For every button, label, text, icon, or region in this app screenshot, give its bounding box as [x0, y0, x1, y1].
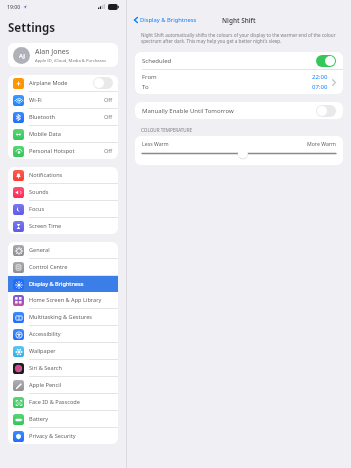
- staticText: Manually Enable Until Tomorrow: [142, 107, 316, 115]
- button[interactable]: Colour temperature: [142, 149, 336, 159]
- button[interactable]: Accessibility: [8, 326, 118, 342]
- staticText: 19:00: [7, 3, 21, 10]
- staticText: Display & Brightness: [29, 280, 113, 288]
- staticText: Notifications: [29, 171, 113, 179]
- staticText: From: [142, 73, 157, 81]
- staticText: Airplane Mode: [29, 79, 93, 87]
- staticText: Multitasking & Gestures: [29, 313, 113, 321]
- staticText: 07:00: [312, 83, 328, 91]
- button[interactable]: Wi-Fi: [8, 92, 118, 108]
- staticText: Bluetooth: [29, 113, 104, 121]
- button[interactable]: Manually Enable Until Tomorrow: [135, 102, 343, 119]
- staticText: Settings: [8, 20, 56, 36]
- staticText: Sounds: [29, 188, 113, 196]
- staticText: COLOUR TEMPERATURE: [141, 127, 193, 133]
- staticText: Night Shift automatically shifts the col…: [141, 32, 337, 44]
- staticText: Apple Pencil: [29, 381, 113, 389]
- staticText: Apple ID, iCloud, Media & Purchases: [35, 58, 107, 64]
- button[interactable]: Bluetooth: [8, 109, 118, 125]
- staticText: Display & Brightness: [140, 16, 197, 24]
- staticText: Siri & Search: [29, 364, 113, 372]
- staticText: General: [29, 246, 113, 254]
- button[interactable]: Mobile Data: [8, 126, 118, 142]
- button[interactable]: Multitasking & Gestures: [8, 309, 118, 325]
- button[interactable]: Notifications: [8, 167, 118, 183]
- staticText: Personal Hotspot: [29, 147, 104, 155]
- staticText: Wallpaper: [29, 347, 113, 355]
- button[interactable]: Control Centre: [8, 259, 118, 275]
- staticText: Face ID & Passcode: [29, 398, 113, 406]
- staticText: AJ: [19, 52, 25, 60]
- staticText: Less Warm: [142, 140, 169, 147]
- staticText: Focus: [29, 205, 113, 213]
- staticText: Screen Time: [29, 222, 113, 230]
- staticText: To: [142, 83, 149, 91]
- button[interactable]: Focus: [8, 201, 118, 217]
- staticText: Battery: [29, 415, 113, 423]
- staticText: Off: [104, 113, 113, 121]
- button[interactable]: Scheduled: [316, 55, 336, 67]
- button[interactable]: Battery: [8, 411, 118, 427]
- staticText: Scheduled: [142, 57, 316, 65]
- button[interactable]: From: [135, 70, 343, 94]
- button[interactable]: Home Screen & App Library: [8, 292, 118, 308]
- button[interactable]: Apple Pencil: [8, 377, 118, 393]
- staticText: Off: [104, 96, 113, 104]
- staticText: Mobile Data: [29, 130, 113, 138]
- staticText: More Warm: [307, 140, 336, 147]
- button[interactable]: Personal Hotspot: [8, 143, 118, 159]
- staticText: Wi-Fi: [29, 96, 104, 104]
- staticText: Off: [104, 147, 113, 155]
- button[interactable]: Airplane Mode: [8, 75, 118, 91]
- button[interactable]: Wallpaper: [8, 343, 118, 359]
- button[interactable]: Sounds: [8, 184, 118, 200]
- staticText: Accessibility: [29, 330, 113, 338]
- button[interactable]: Privacy & Security: [8, 428, 118, 444]
- button[interactable]: Display & Brightness: [8, 276, 118, 292]
- button[interactable]: Scheduled: [135, 52, 343, 69]
- staticText: Control Centre: [29, 263, 113, 271]
- staticText: Alan Jones: [35, 47, 70, 57]
- staticText: Night Shift: [222, 16, 256, 25]
- button[interactable]: Siri & Search: [8, 360, 118, 376]
- button[interactable]: AJ: [8, 43, 118, 67]
- staticText: Privacy & Security: [29, 432, 113, 440]
- button[interactable]: Manually Enable Until Tomorrow: [316, 105, 336, 117]
- staticText: 22:00: [312, 73, 328, 81]
- button[interactable]: Face ID & Passcode: [8, 394, 118, 410]
- button[interactable]: Airplane Mode: [93, 77, 113, 89]
- button[interactable]: Screen Time: [8, 218, 118, 234]
- staticText: Home Screen & App Library: [29, 296, 113, 304]
- button[interactable]: Display & Brightness: [127, 14, 201, 26]
- button[interactable]: General: [8, 242, 118, 258]
